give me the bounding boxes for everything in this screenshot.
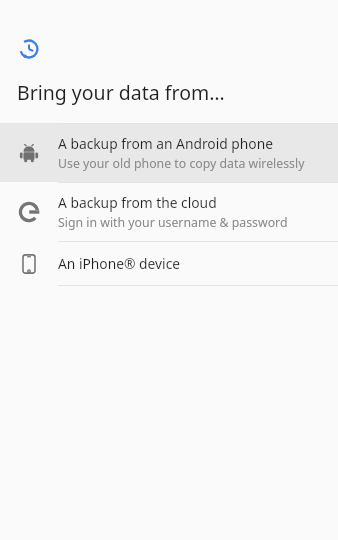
staticText: Use your old phone to copy data wireless… bbox=[58, 155, 305, 172]
staticText: Bring your data from… bbox=[17, 79, 225, 106]
staticText: Sign in with your username & password bbox=[58, 214, 288, 231]
staticText: A backup from an Android phone bbox=[58, 134, 273, 153]
other: iPhone device bbox=[17, 252, 41, 276]
other: Google account bbox=[17, 200, 41, 224]
other: Restore bbox=[17, 38, 39, 60]
other: Android phone bbox=[17, 141, 41, 165]
staticText: A backup from the cloud bbox=[58, 193, 217, 212]
staticText: An iPhone® device bbox=[58, 254, 181, 273]
button[interactable]: iPhone device bbox=[0, 242, 338, 285]
button[interactable]: Google account bbox=[0, 183, 338, 241]
button[interactable]: Android phone bbox=[0, 124, 338, 182]
